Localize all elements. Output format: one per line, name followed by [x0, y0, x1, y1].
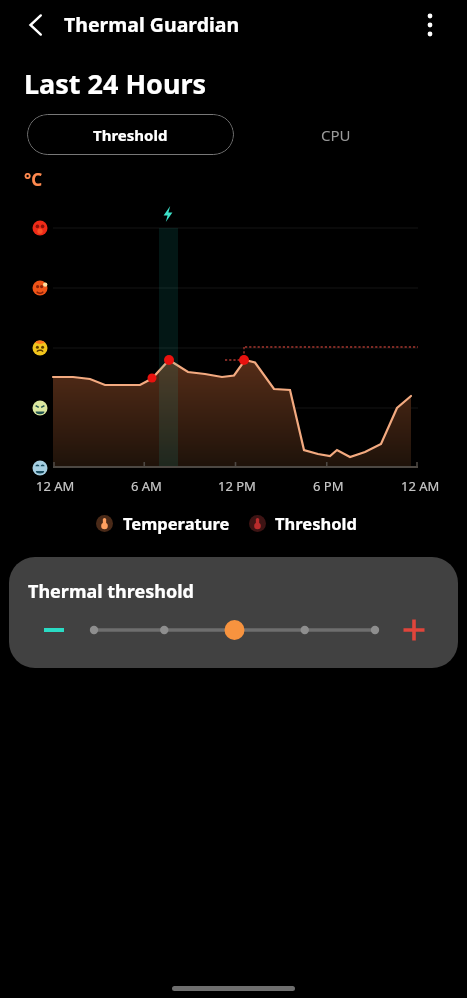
- button[interactable]: Decrease threshold: [34, 610, 74, 650]
- staticText: °C: [24, 168, 43, 191]
- button[interactable]: More options: [405, 0, 455, 50]
- staticText: Temperature: [123, 512, 230, 534]
- button[interactable]: Threshold slider: [81, 610, 401, 650]
- staticText: CPU: [321, 125, 351, 145]
- button[interactable]: Back: [11, 0, 61, 50]
- button[interactable]: CPU: [256, 114, 416, 155]
- button[interactable]: Increase threshold: [394, 610, 434, 650]
- staticText: 6 PM: [313, 477, 344, 495]
- button[interactable]: Threshold: [27, 114, 234, 155]
- staticText: Last 24 Hours: [24, 65, 207, 102]
- staticText: Threshold: [93, 125, 168, 145]
- staticText: 12 AM: [401, 477, 440, 495]
- staticText: Threshold: [275, 512, 357, 534]
- staticText: Thermal Guardian: [64, 11, 240, 38]
- staticText: 6 AM: [131, 477, 162, 495]
- staticText: 12 AM: [36, 477, 75, 495]
- staticText: 12 PM: [218, 477, 256, 495]
- staticText: Thermal threshold: [28, 579, 194, 604]
